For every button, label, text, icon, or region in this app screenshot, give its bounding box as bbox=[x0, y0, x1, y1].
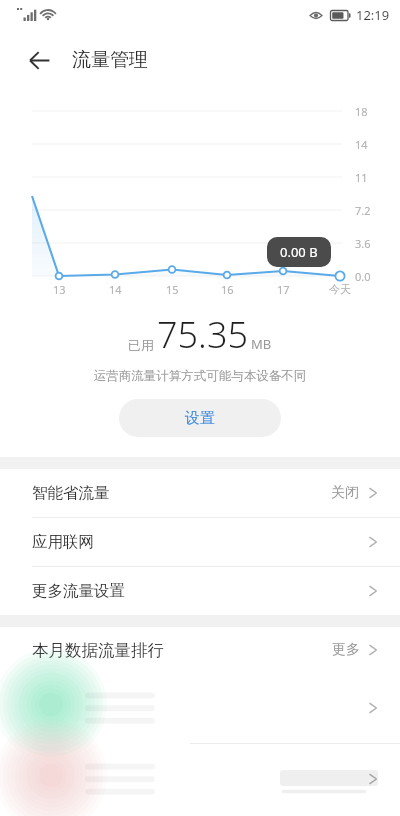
staticText: 14 bbox=[355, 137, 368, 152]
button[interactable] bbox=[0, 673, 378, 743]
button[interactable]: 智能省流量 bbox=[0, 469, 400, 518]
staticText: 今天 bbox=[329, 282, 351, 296]
button[interactable] bbox=[0, 744, 378, 814]
staticText: 7.2 bbox=[355, 203, 371, 218]
staticText: 11 bbox=[355, 170, 368, 185]
staticText: 0.00 B bbox=[280, 243, 318, 261]
staticText: 16 bbox=[221, 282, 234, 297]
staticText: 运营商流量计算方式可能与本设备不同 bbox=[0, 368, 400, 384]
staticText: 流量管理 bbox=[72, 48, 148, 72]
button[interactable]: 本月数据流量排行 bbox=[32, 627, 378, 673]
staticText: 14 bbox=[109, 282, 122, 297]
button[interactable]: Back bbox=[18, 39, 60, 81]
staticText: 更多 bbox=[332, 641, 360, 659]
staticText: 智能省流量 bbox=[32, 483, 110, 503]
staticText: 设置 bbox=[185, 409, 215, 428]
button[interactable]: 设置 bbox=[119, 399, 281, 437]
staticText: 关闭 bbox=[331, 484, 359, 502]
staticText: MB bbox=[251, 335, 272, 353]
button[interactable]: 应用联网 bbox=[0, 518, 400, 567]
staticText: 13 bbox=[53, 282, 66, 297]
staticText: 更多流量设置 bbox=[32, 581, 125, 601]
staticText: 应用联网 bbox=[32, 532, 94, 552]
staticText: 已用 bbox=[128, 337, 154, 353]
staticText: 0.0 bbox=[355, 269, 371, 284]
staticText: 3.6 bbox=[355, 236, 371, 251]
button[interactable]: 更多流量设置 bbox=[0, 567, 400, 615]
staticText: 15 bbox=[166, 282, 179, 297]
staticText: 17 bbox=[277, 282, 290, 297]
staticText: 本月数据流量排行 bbox=[32, 640, 164, 661]
staticText: 12:19 bbox=[356, 6, 390, 24]
staticText: 75.35 bbox=[157, 310, 249, 359]
staticText: 18 bbox=[355, 104, 368, 119]
